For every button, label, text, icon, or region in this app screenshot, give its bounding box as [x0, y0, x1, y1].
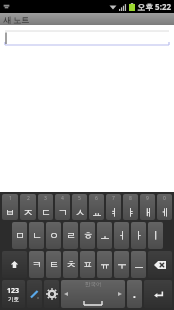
- staticText: ㄹ: [66, 229, 76, 242]
- button[interactable]: 4: [55, 194, 70, 220]
- staticText: ㅐ: [143, 206, 153, 219]
- staticText: 7: [112, 195, 115, 202]
- button[interactable]: 0: [157, 194, 172, 220]
- staticText: 3: [44, 195, 47, 202]
- staticText: ㅛ: [92, 206, 102, 219]
- button[interactable]: ㅌ: [46, 251, 61, 278]
- staticText: ㅔ: [160, 206, 170, 219]
- button[interactable]: 5: [72, 194, 87, 220]
- staticText: ㄷ: [41, 206, 51, 219]
- staticText: ㄴ: [32, 229, 42, 242]
- button[interactable]: Enter: [144, 280, 172, 308]
- staticText: ㅑ: [126, 206, 136, 219]
- staticText: ㄱ: [58, 206, 68, 219]
- staticText: ㅋ: [32, 258, 42, 271]
- button[interactable]: 1: [2, 194, 18, 220]
- staticText: 한국어: [85, 281, 102, 288]
- button[interactable]: ㅊ: [63, 251, 78, 278]
- staticText: ㅁ: [15, 229, 25, 242]
- staticText: 1: [9, 195, 12, 202]
- staticText: ㅓ: [117, 229, 127, 242]
- button[interactable]: ㄹ: [63, 222, 78, 249]
- staticText: ㅌ: [49, 258, 59, 271]
- staticText: ㅂ: [5, 206, 15, 219]
- button[interactable]: ㅋ: [29, 251, 44, 278]
- staticText: 123: [7, 286, 20, 296]
- button[interactable]: Backspace: [148, 251, 172, 278]
- staticText: ㅅ: [75, 206, 85, 219]
- staticText: ㅠ: [100, 258, 110, 271]
- staticText: 새 노트: [3, 14, 30, 25]
- button[interactable]: 8: [123, 194, 138, 220]
- staticText: 오후 5:22: [137, 1, 172, 12]
- button[interactable]: ㅠ: [97, 251, 112, 278]
- staticText: 4: [61, 195, 64, 202]
- staticText: ㅕ: [109, 206, 119, 219]
- staticText: 6: [95, 195, 98, 202]
- button[interactable]: 새 노트: [0, 13, 174, 25]
- button[interactable]: 3: [38, 194, 53, 220]
- button[interactable]: 2: [20, 194, 36, 220]
- staticText: ㅊ: [66, 258, 76, 271]
- button[interactable]: ㅏ: [131, 222, 146, 249]
- button[interactable]: [0, 25, 174, 192]
- button[interactable]: Change language: [27, 280, 42, 308]
- staticText: 2: [27, 195, 30, 202]
- button[interactable]: ㅁ: [12, 222, 27, 249]
- staticText: 8: [129, 195, 132, 202]
- button[interactable]: ㅡ: [131, 251, 146, 278]
- button[interactable]: ㅓ: [114, 222, 129, 249]
- staticText: ㅈ: [23, 206, 33, 219]
- button[interactable]: .: [127, 280, 142, 308]
- button[interactable]: ㅣ: [148, 222, 163, 249]
- button[interactable]: 123: [2, 280, 25, 308]
- staticText: ㅗ: [100, 229, 110, 242]
- staticText: ㅣ: [151, 229, 161, 242]
- staticText: .: [133, 287, 136, 301]
- button[interactable]: Shift: [2, 251, 27, 278]
- button[interactable]: ㅜ: [114, 251, 129, 278]
- staticText: ㅇ: [49, 229, 59, 242]
- staticText: ㅍ: [83, 258, 93, 271]
- button[interactable]: Keyboard settings: [44, 280, 59, 308]
- staticText: ㅜ: [117, 258, 127, 271]
- button[interactable]: ㄴ: [29, 222, 44, 249]
- button[interactable]: Space: [61, 280, 125, 308]
- button[interactable]: ㅎ: [80, 222, 95, 249]
- staticText: ㅎ: [83, 229, 93, 242]
- staticText: ㅡ: [134, 258, 144, 271]
- staticText: 0: [163, 195, 166, 202]
- button[interactable]: 6: [89, 194, 104, 220]
- button[interactable]: 7: [106, 194, 121, 220]
- button[interactable]: ㅍ: [80, 251, 95, 278]
- staticText: ㅏ: [134, 229, 144, 242]
- staticText: 5: [78, 195, 81, 202]
- button[interactable]: ㅗ: [97, 222, 112, 249]
- staticText: 기호: [8, 296, 19, 303]
- staticText: 9: [146, 195, 149, 202]
- button[interactable]: 9: [140, 194, 155, 220]
- button[interactable]: ㅇ: [46, 222, 61, 249]
